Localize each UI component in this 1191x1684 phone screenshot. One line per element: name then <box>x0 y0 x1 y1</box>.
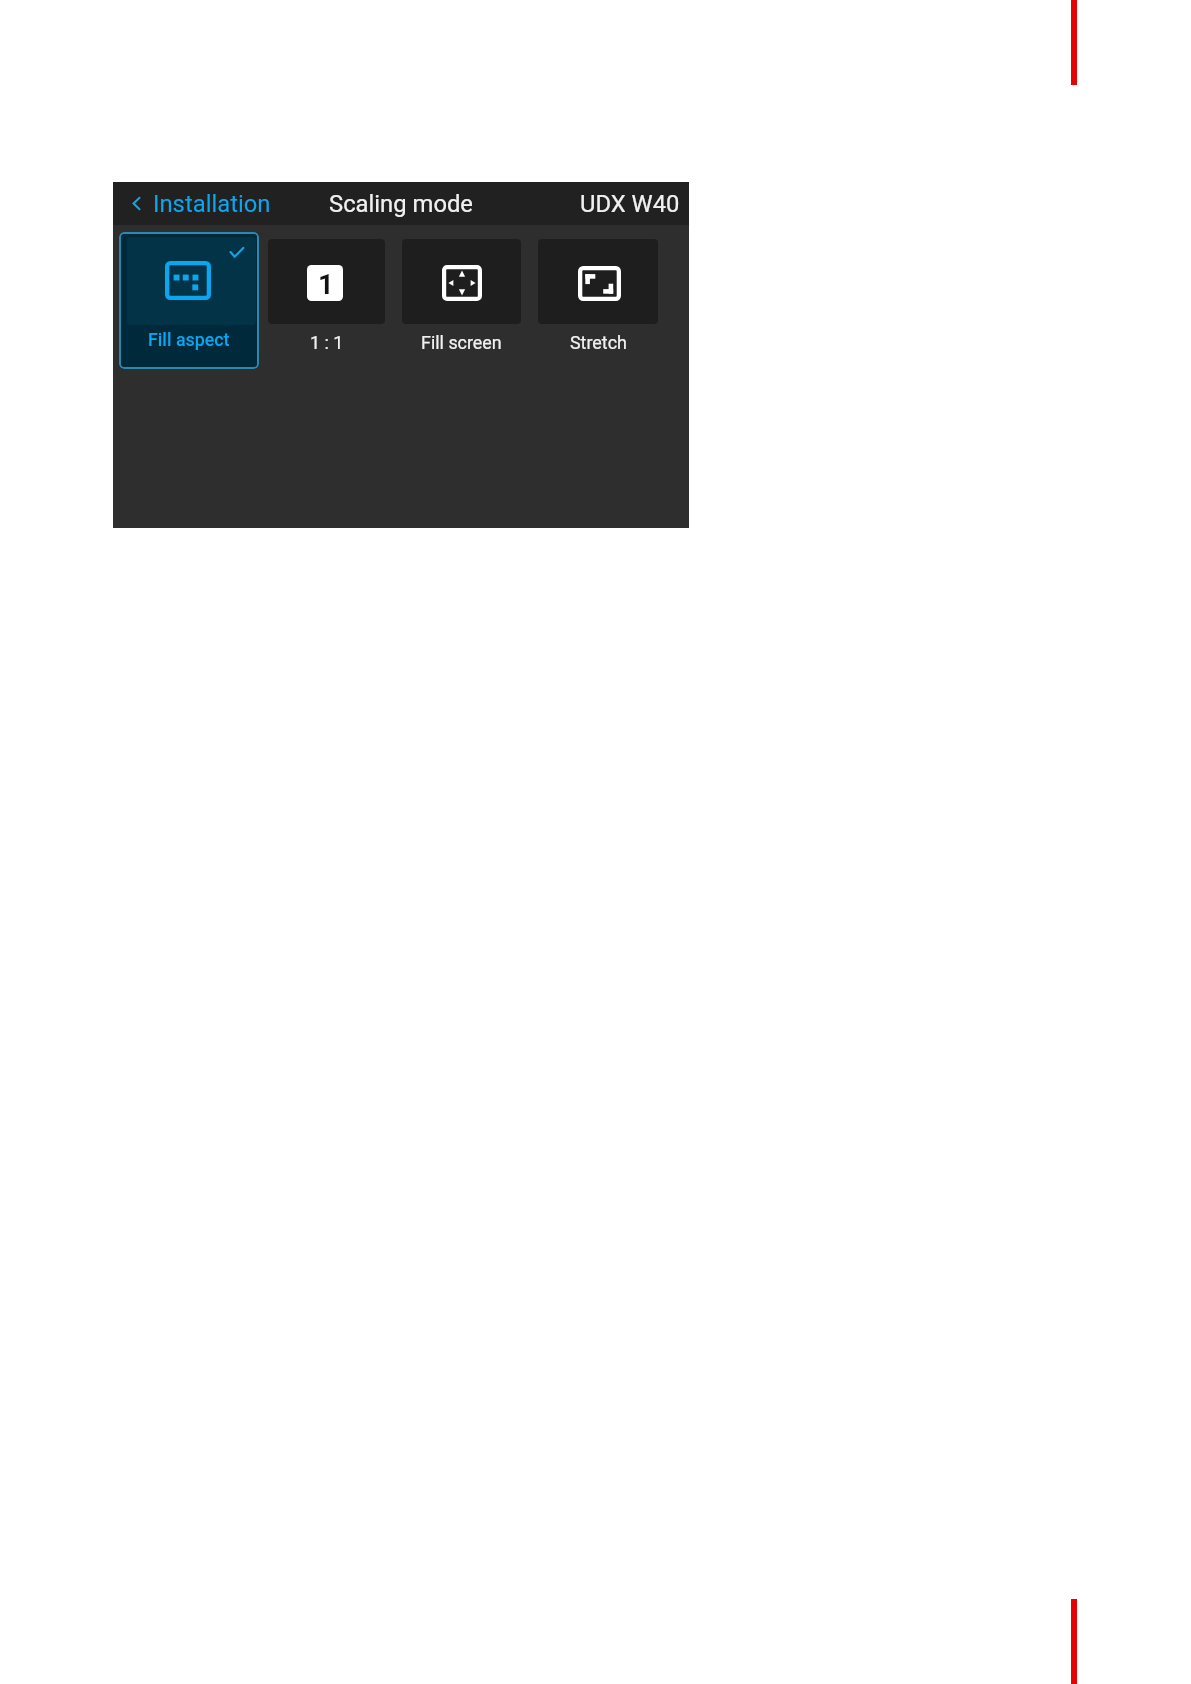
button[interactable]: Stretch <box>538 239 658 352</box>
staticText: Fill screen <box>421 332 502 353</box>
staticText: 1 <box>318 268 334 300</box>
staticText: 1 : 1 <box>310 332 344 353</box>
button[interactable]: Fill screen <box>402 239 521 352</box>
staticText: Fill aspect <box>148 329 230 350</box>
staticText: UDX W40 <box>580 190 680 218</box>
staticText: Installation <box>153 190 271 218</box>
button[interactable]: Fill aspect <box>119 232 259 369</box>
staticText: Scaling mode <box>329 190 473 218</box>
other: Back to Installation <box>132 196 141 211</box>
staticText: Stretch <box>570 332 627 353</box>
button[interactable]: 1 <box>268 239 385 352</box>
button[interactable]: Back to Installation <box>113 182 288 225</box>
